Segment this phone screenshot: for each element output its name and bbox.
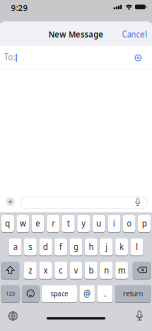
button[interactable]: w <box>16 215 29 232</box>
staticText: s <box>28 242 32 252</box>
staticText: v <box>74 265 78 276</box>
button[interactable]: o <box>123 215 136 232</box>
button[interactable]: j <box>100 238 113 256</box>
staticText: m <box>118 265 125 276</box>
button[interactable]: f <box>54 238 67 256</box>
button[interactable]: x <box>39 261 52 279</box>
staticText: space <box>50 289 68 298</box>
button[interactable]: Cancel <box>122 29 147 40</box>
staticText: t <box>67 218 70 229</box>
button[interactable]: i <box>108 215 120 232</box>
staticText: r <box>52 218 55 229</box>
staticText: To: <box>4 52 15 62</box>
button[interactable]: r <box>47 215 60 232</box>
staticText: i <box>113 218 115 229</box>
staticText: y <box>82 218 86 229</box>
button[interactable] <box>20 197 148 209</box>
button[interactable]: k <box>115 238 128 256</box>
staticText: z <box>28 265 32 276</box>
button[interactable]: 123 <box>1 285 19 303</box>
staticText: u <box>96 218 101 229</box>
button[interactable]: c <box>54 261 67 279</box>
button[interactable] <box>22 285 39 303</box>
staticText: return <box>123 289 143 298</box>
button[interactable]: d <box>39 238 52 256</box>
staticText: a <box>13 242 17 252</box>
button[interactable]: y <box>77 215 90 232</box>
button[interactable] <box>133 197 143 209</box>
button[interactable] <box>135 54 141 61</box>
button[interactable]: g <box>70 238 82 256</box>
button[interactable]: s <box>24 238 37 256</box>
button[interactable]: h <box>85 238 98 256</box>
button[interactable]: n <box>100 261 113 279</box>
staticText: Cancel <box>122 29 147 40</box>
staticText: 123 <box>6 290 15 297</box>
staticText: h <box>89 242 94 252</box>
button[interactable]: v <box>70 261 82 279</box>
button[interactable] <box>1 261 19 279</box>
button[interactable]: . <box>97 285 113 303</box>
staticText: f <box>59 242 62 252</box>
staticText: c <box>59 265 63 276</box>
button[interactable] <box>133 261 151 279</box>
staticText: 9:29 <box>11 2 28 13</box>
staticText: j <box>105 242 107 252</box>
staticText: w <box>20 218 26 229</box>
staticText: x <box>44 265 48 276</box>
staticText: g <box>73 242 78 252</box>
button[interactable]: t <box>62 215 75 232</box>
button[interactable]: l <box>130 238 143 256</box>
staticText: New Message <box>48 29 103 40</box>
button[interactable]: u <box>92 215 105 232</box>
staticText: l <box>136 242 138 252</box>
staticText: k <box>120 242 124 252</box>
staticText: q <box>5 218 10 229</box>
staticText: p <box>142 218 147 229</box>
button[interactable]: p <box>138 215 151 232</box>
button[interactable] <box>6 197 15 206</box>
button[interactable]: m <box>115 261 128 279</box>
button[interactable]: space <box>42 285 77 303</box>
button[interactable] <box>133 310 145 322</box>
button[interactable]: return <box>115 285 151 303</box>
button[interactable]: a <box>9 238 22 256</box>
button[interactable]: b <box>85 261 98 279</box>
staticText: e <box>35 218 40 229</box>
button[interactable]: q <box>1 215 14 232</box>
staticText: o <box>127 218 132 229</box>
staticText: b <box>89 265 94 276</box>
button[interactable] <box>7 310 19 322</box>
button[interactable]: @ <box>79 285 95 303</box>
staticText: d <box>43 242 48 252</box>
staticText: n <box>104 265 109 276</box>
staticText: . <box>104 288 106 299</box>
button[interactable]: z <box>24 261 37 279</box>
staticText: @ <box>84 288 91 299</box>
button[interactable] <box>0 45 152 70</box>
button[interactable]: e <box>32 215 44 232</box>
